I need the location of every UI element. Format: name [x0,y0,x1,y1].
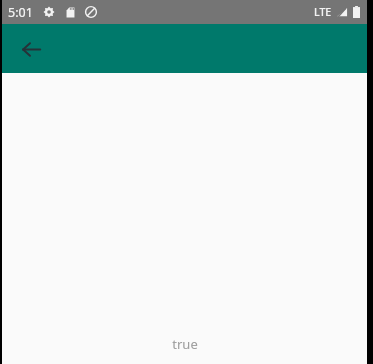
button[interactable]: Back [11,29,51,69]
staticText: true [172,335,198,353]
staticText: LTE [314,5,332,19]
staticText: 5:01 [8,4,33,21]
